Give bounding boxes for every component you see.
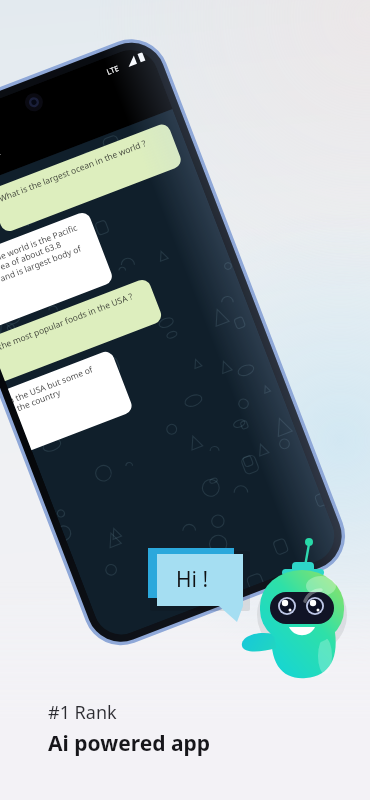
other: Ai powered app promo (0, 0, 370, 800)
button[interactable]: Ai powered app promo (0, 0, 370, 800)
